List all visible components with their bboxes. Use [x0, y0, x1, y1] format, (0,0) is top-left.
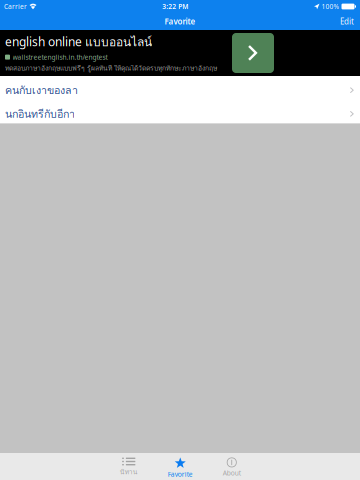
staticText: 100%	[321, 2, 339, 11]
button[interactable]: คนกับเงาของลา	[0, 76, 360, 100]
staticText: นิทาน	[120, 467, 138, 477]
staticText: Favorite	[164, 16, 195, 27]
button[interactable]: นิทาน	[103, 453, 154, 480]
button[interactable]: Edit	[334, 13, 360, 30]
staticText: Edit	[340, 16, 354, 27]
staticText: Carrier	[4, 2, 27, 11]
staticText: wallstreetenglish.in.th/engtest	[12, 53, 107, 62]
staticText: คนกับเงาของลา	[5, 82, 78, 98]
staticText: About	[223, 469, 241, 477]
staticText: 3:22 PM	[162, 2, 188, 11]
staticText: Favorite	[168, 470, 193, 479]
button[interactable]: นกอินทรีกับอีกา	[0, 100, 360, 123]
staticText: นกอินทรีกับอีกา	[5, 106, 75, 122]
button[interactable]: About	[206, 453, 257, 480]
button[interactable]: english online แบบออนไลน์	[0, 30, 360, 76]
staticText: english online แบบออนไลน์	[5, 33, 152, 51]
button[interactable]: Favorite	[154, 453, 206, 480]
staticText: ทดสอบภาษาอังกฤษแบบฟรีๆ รู้ผลทันที ให้คุณ…	[5, 63, 217, 73]
